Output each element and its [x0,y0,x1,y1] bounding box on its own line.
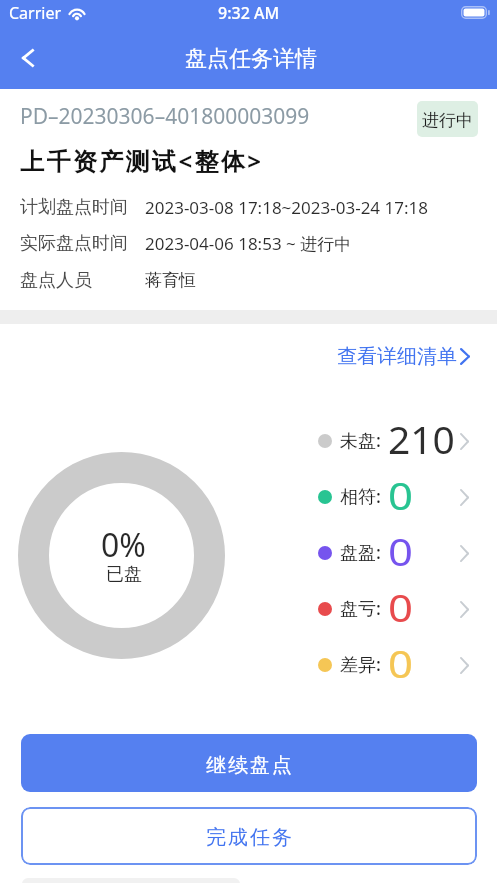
staticText: 继续盘点 [205,753,293,778]
staticText: 盘点人员 [20,269,92,292]
staticText: 完成任务 [205,825,293,850]
staticText: PD–20230306–401800003099 [20,102,310,131]
staticText: 2023-03-08 17:18~2023-03-24 17:18 [145,196,428,219]
button[interactable]: 继续盘点 [21,734,477,792]
button[interactable]: 相符: [300,469,497,525]
staticText: 0 [388,524,414,577]
staticText: 蒋育恒 [145,270,196,291]
staticText: 0 [388,468,414,521]
staticText: 差异: [340,652,381,677]
staticText: 已盘 [106,563,142,586]
button[interactable]: 差异: [300,637,497,693]
staticText: 盘盈: [340,540,381,565]
button[interactable]: 未盘: [300,413,497,469]
staticText: 0 [388,636,414,689]
staticText: 进行中 [422,110,473,131]
staticText: 实际盘点时间 [20,232,128,255]
staticText: 未盘: [340,428,381,453]
staticText: 210 [388,412,455,465]
staticText: 计划盘点时间 [20,196,128,219]
staticText: Carrier [9,2,62,24]
staticText: 相符: [340,484,381,509]
staticText: 9:32 AM [218,2,280,24]
button[interactable]: 完成任务 [21,807,477,865]
staticText: 盘点任务详情 [185,45,317,73]
button[interactable]: Back [6,36,50,80]
staticText: 0% [101,523,146,567]
staticText: 查看详细清单 [337,344,457,369]
button[interactable]: 盘亏: [300,581,497,637]
button[interactable]: 查看详细清单 [337,338,470,375]
staticText: 上千资产测试<整体> [20,144,264,176]
staticText: 盘亏: [340,596,381,621]
staticText: 2023-04-06 18:53 ~ 进行中 [145,232,352,255]
staticText: 0 [388,580,414,633]
button[interactable]: 盘盈: [300,525,497,581]
